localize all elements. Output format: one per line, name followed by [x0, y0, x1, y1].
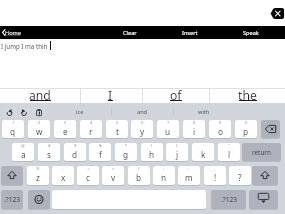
button[interactable]: 2 [28, 120, 50, 138]
button[interactable]: 7 [157, 120, 179, 138]
button[interactable]: return [242, 143, 281, 161]
button[interactable]: 6 [131, 120, 153, 138]
staticText: I jump I ma thin [1, 42, 48, 50]
button[interactable]: Clear [108, 26, 152, 39]
button[interactable]: = [102, 166, 124, 185]
staticText: and [29, 87, 51, 101]
staticText: = [112, 166, 115, 171]
staticText: 8 [193, 120, 196, 125]
button[interactable]: 0 [235, 120, 257, 138]
staticText: l [228, 149, 231, 160]
button[interactable]: , [204, 166, 226, 185]
staticText: z [36, 172, 40, 183]
staticText: p [243, 126, 249, 137]
button[interactable]: and [0, 89, 80, 103]
staticText: i [193, 126, 196, 137]
staticText: b [136, 172, 142, 183]
staticText: .?123 [4, 195, 20, 204]
button[interactable]: Speak [229, 26, 273, 39]
staticText: h [149, 149, 155, 160]
button[interactable]: Paste [32, 107, 46, 118]
button[interactable]: 9 [209, 120, 231, 138]
staticText: ice [76, 108, 84, 116]
button[interactable]: - [52, 166, 74, 185]
button[interactable]: with [173, 105, 235, 118]
staticText: ' [203, 143, 204, 148]
staticText: . [239, 166, 241, 171]
staticText: , [214, 166, 216, 171]
button[interactable]: Close [270, 8, 284, 19]
button[interactable]: + [77, 166, 99, 185]
button[interactable]: the [209, 89, 285, 103]
button[interactable]: ( [141, 143, 163, 161]
button[interactable]: Emoji [28, 190, 50, 209]
staticText: e [63, 126, 68, 137]
staticText: Clear [123, 29, 137, 37]
button[interactable]: # [38, 143, 60, 161]
staticText: u [165, 126, 171, 137]
staticText: ( [151, 143, 153, 148]
button[interactable]: I [80, 89, 141, 103]
staticText: Insert [182, 29, 198, 37]
button[interactable]: of [142, 89, 210, 103]
staticText: y [140, 126, 145, 137]
button[interactable]: & [89, 143, 111, 161]
staticText: x [61, 172, 66, 183]
button[interactable]: 4 [80, 120, 102, 138]
button[interactable]: Backspace [261, 120, 280, 138]
staticText: the [238, 87, 257, 101]
button[interactable]: Home [0, 26, 34, 39]
button[interactable]: Insert [168, 26, 212, 39]
button[interactable]: / [128, 166, 150, 185]
staticText: o [218, 126, 223, 137]
button[interactable]: : [178, 166, 200, 185]
staticText: * [125, 143, 128, 148]
staticText: Speak [243, 29, 259, 37]
button[interactable]: and [111, 105, 173, 118]
button[interactable]: 5 [106, 120, 128, 138]
staticText: r [89, 126, 93, 137]
staticText: 9 [219, 120, 222, 125]
staticText: d [72, 149, 78, 160]
button[interactable]: % [27, 166, 49, 185]
staticText: f [99, 149, 102, 160]
button[interactable]: ice [49, 105, 111, 118]
button[interactable]: Hide keyboard [249, 190, 278, 209]
button[interactable]: .?123 [211, 190, 246, 209]
staticText: @ [21, 143, 25, 148]
staticText: v [111, 172, 116, 183]
staticText: m [185, 172, 193, 183]
staticText: 6 [141, 120, 144, 125]
button[interactable]: Undo [2, 107, 17, 118]
staticText: with [198, 108, 210, 116]
staticText: 1 [12, 120, 15, 125]
staticText: a [21, 149, 26, 160]
button[interactable]: 8 [183, 120, 205, 138]
staticText: + [87, 166, 90, 171]
staticText: " [228, 143, 230, 148]
staticText: 0 [245, 120, 248, 125]
button[interactable]: ; [153, 166, 175, 185]
staticText: k [201, 149, 206, 160]
staticText: t [116, 126, 119, 137]
button[interactable]: * [115, 143, 137, 161]
button[interactable]: .?123 [1, 190, 23, 209]
button[interactable]: ) [166, 143, 188, 161]
staticText: % [36, 166, 40, 171]
staticText: I [108, 87, 113, 101]
staticText: .?123 [221, 195, 237, 204]
button[interactable]: @ [12, 143, 34, 161]
staticText: j [176, 149, 179, 160]
button[interactable]: " [218, 143, 240, 161]
staticText: c [86, 172, 90, 183]
button[interactable]: $ [64, 143, 86, 161]
button[interactable]: Redo [17, 107, 31, 118]
button[interactable]: . [229, 166, 251, 185]
button[interactable]: Shift [252, 166, 278, 185]
staticText: / [138, 166, 140, 171]
button[interactable]: ' [192, 143, 214, 161]
button[interactable]: Shift [1, 166, 23, 185]
button[interactable]: 3 [54, 120, 76, 138]
button[interactable]: 1 [2, 120, 24, 138]
